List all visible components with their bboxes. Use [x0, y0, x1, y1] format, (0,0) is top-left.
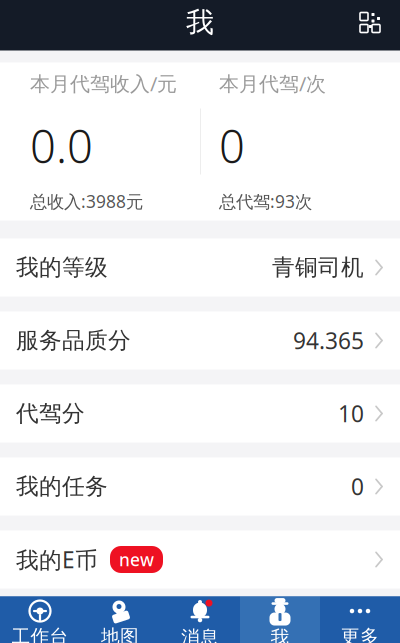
- staticText: 本月代驾/次: [219, 70, 326, 97]
- button[interactable]: 更多: [320, 596, 400, 643]
- staticText: 服务品质分: [16, 327, 131, 354]
- staticText: 我的等级: [16, 254, 108, 281]
- staticText: 0: [219, 116, 245, 176]
- button[interactable]: 服务品质分: [0, 311, 400, 369]
- staticText: 我: [270, 626, 289, 643]
- staticText: 94.365: [293, 325, 364, 355]
- staticText: 我的任务: [16, 473, 108, 500]
- staticText: 地图: [101, 625, 139, 643]
- staticText: 我: [186, 5, 214, 40]
- staticText: 0.0: [30, 116, 93, 176]
- staticText: 工作台: [11, 625, 68, 643]
- staticText: 0: [351, 471, 364, 501]
- staticText: 青铜司机: [272, 254, 364, 281]
- staticText: 我的E币: [16, 544, 98, 574]
- button[interactable]: 扫一扫: [348, 0, 392, 44]
- staticText: new: [119, 548, 154, 571]
- staticText: 总收入:3988元: [30, 190, 143, 213]
- button[interactable]: 我的等级: [0, 238, 400, 296]
- button[interactable]: 工作台: [0, 596, 80, 643]
- staticText: 10: [338, 398, 364, 428]
- staticText: 代驾分: [16, 400, 85, 427]
- button[interactable]: 代驾分: [0, 384, 400, 442]
- button[interactable]: 我的任务: [0, 457, 400, 515]
- staticText: 总代驾:93次: [219, 190, 312, 213]
- button[interactable]: 地图: [80, 596, 160, 643]
- button[interactable]: 我的E币: [0, 530, 400, 588]
- button[interactable]: 消息: [160, 596, 240, 643]
- staticText: 消息: [181, 626, 219, 643]
- staticText: 更多: [341, 625, 379, 643]
- button[interactable]: 我: [240, 596, 320, 643]
- staticText: 本月代驾收入/元: [30, 70, 177, 97]
